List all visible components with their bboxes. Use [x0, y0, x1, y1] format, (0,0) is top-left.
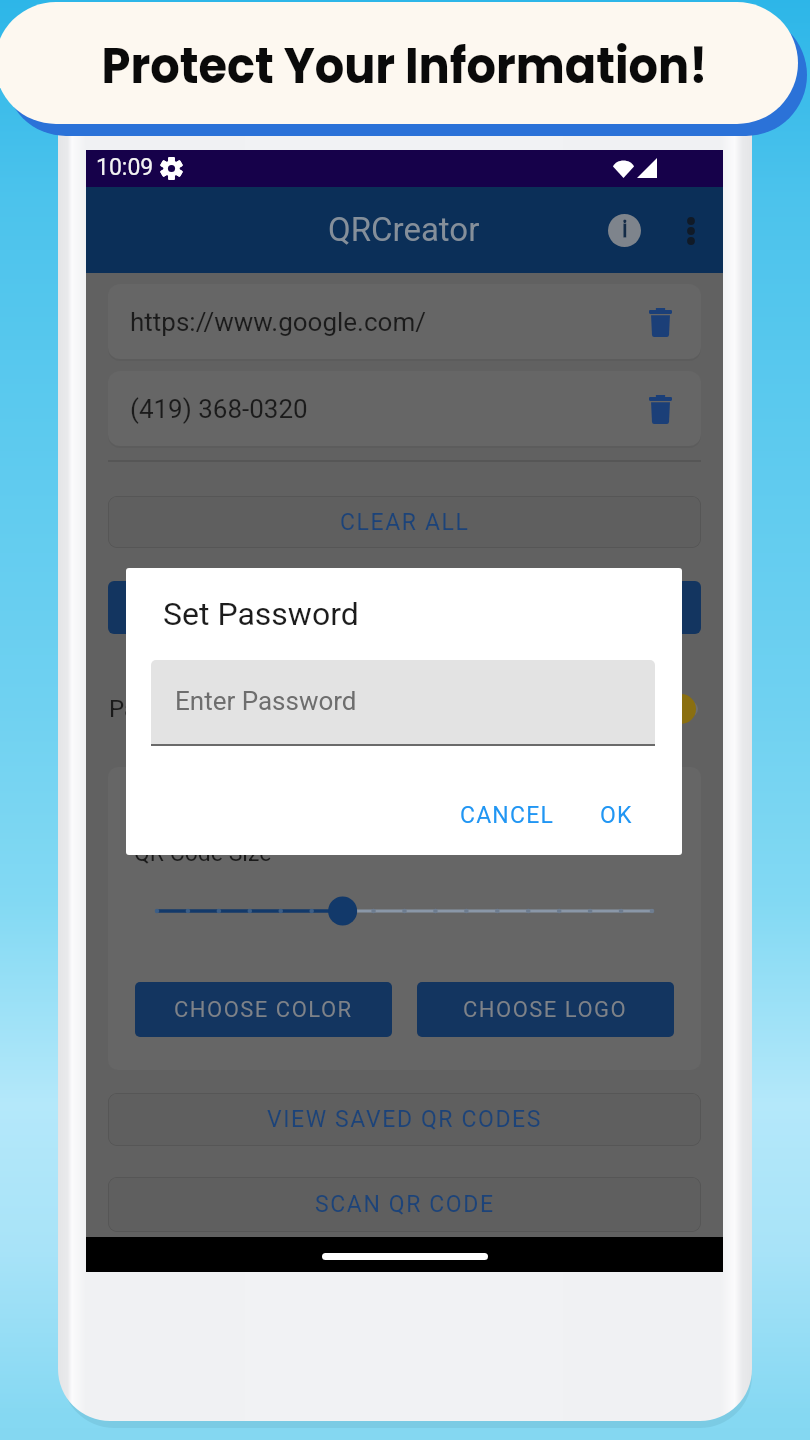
button[interactable]: CHOOSE COLOR	[135, 982, 392, 1037]
staticText: CHOOSE COLOR	[174, 997, 353, 1023]
staticText: (419) 368-0320	[130, 394, 308, 424]
staticText: SCAN QR CODE	[315, 1191, 495, 1218]
button[interactable]: Info	[600, 206, 649, 255]
staticText: GENERATE QR CODE	[285, 594, 524, 621]
staticText: i	[622, 216, 628, 243]
button[interactable]: GENERATE QR CODE	[108, 581, 701, 634]
staticText: CANCEL	[460, 802, 555, 829]
button[interactable]: Delete	[641, 303, 679, 341]
button[interactable]: (419) 368-0320	[108, 371, 701, 446]
staticText: Protect Your Information!	[101, 31, 708, 101]
staticText: OK	[600, 802, 633, 829]
button[interactable]: https://www.google.com/	[108, 284, 701, 359]
staticText: VIEW SAVED QR CODES	[267, 1106, 542, 1133]
staticText: Enter Password	[175, 686, 357, 716]
staticText: https://www.google.com/	[130, 307, 426, 337]
button[interactable]: CHOOSE LOGO	[417, 982, 674, 1037]
button[interactable]: SCAN QR CODE	[108, 1177, 701, 1232]
button[interactable]: More options	[666, 206, 715, 255]
button[interactable]: Enter Password	[151, 660, 655, 746]
staticText: CHOOSE LOGO	[463, 997, 628, 1023]
staticText: 10:09	[96, 154, 154, 181]
button[interactable]: Delete	[641, 390, 679, 428]
staticText: QR Code Size	[134, 840, 272, 867]
button[interactable]: OK	[584, 786, 649, 845]
button[interactable]: CLEAR ALL	[108, 496, 701, 548]
staticText: CLEAR ALL	[340, 509, 470, 536]
button[interactable]: VIEW SAVED QR CODES	[108, 1093, 701, 1146]
staticText: Password Protect	[109, 695, 299, 723]
button[interactable]: Password Protect	[109, 691, 702, 727]
button[interactable]: CANCEL	[444, 786, 571, 845]
staticText: Set Password	[163, 595, 359, 633]
staticText: QRCreator	[328, 210, 480, 249]
